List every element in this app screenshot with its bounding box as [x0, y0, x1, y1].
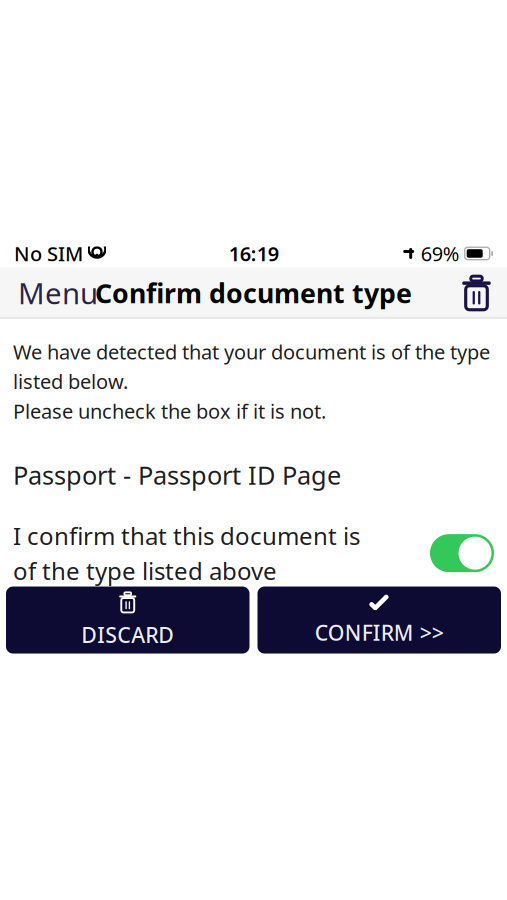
- staticText: We have detected that your document is o…: [13, 338, 490, 424]
- button[interactable]: Confirm document type: [430, 534, 494, 572]
- button[interactable]: CONFIRM >>: [257, 586, 501, 653]
- staticText: No SIM: [14, 240, 83, 267]
- staticText: I confirm that this document is of the t…: [13, 520, 360, 586]
- staticText: 69%: [421, 240, 460, 267]
- button[interactable]: DISCARD: [6, 586, 249, 653]
- staticText: Menu: [18, 273, 98, 312]
- staticText: CONFIRM >>: [315, 618, 444, 647]
- button[interactable]: Delete document: [446, 268, 507, 318]
- staticText: DISCARD: [81, 621, 174, 649]
- staticText: Confirm document type: [95, 275, 412, 311]
- staticText: 16:19: [229, 240, 279, 267]
- button[interactable]: Menu: [0, 268, 116, 318]
- staticText: Passport - Passport ID Page: [13, 458, 341, 492]
